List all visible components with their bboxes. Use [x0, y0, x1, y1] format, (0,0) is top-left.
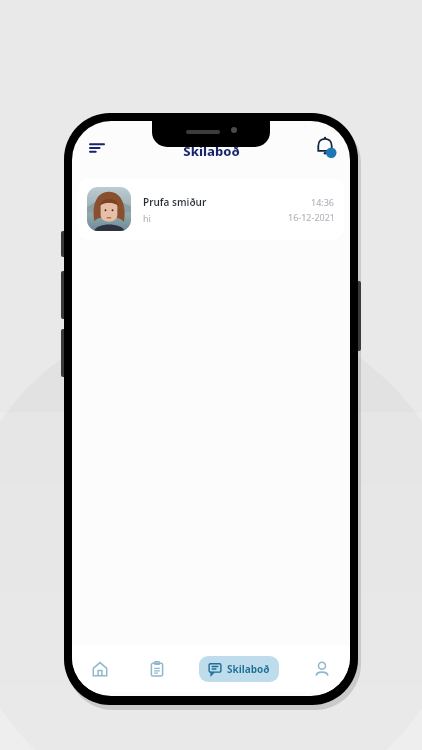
button[interactable]: Prufa smiður	[78, 178, 344, 240]
staticText: Skilaboð	[227, 662, 270, 676]
staticText: hi	[143, 212, 151, 224]
button[interactable]: Profile	[293, 646, 350, 692]
staticText: 14:36	[311, 196, 335, 208]
button[interactable]: Menu	[80, 130, 114, 164]
button[interactable]: Tasks	[128, 646, 185, 692]
button[interactable]: Home	[72, 646, 128, 692]
button[interactable]: Notifications	[308, 130, 342, 164]
staticText: Prufa smiður	[143, 195, 207, 209]
staticText: Skilaboð	[183, 142, 240, 160]
button[interactable]: Skilaboð	[199, 656, 279, 682]
staticText: 16-12-2021	[288, 211, 335, 223]
